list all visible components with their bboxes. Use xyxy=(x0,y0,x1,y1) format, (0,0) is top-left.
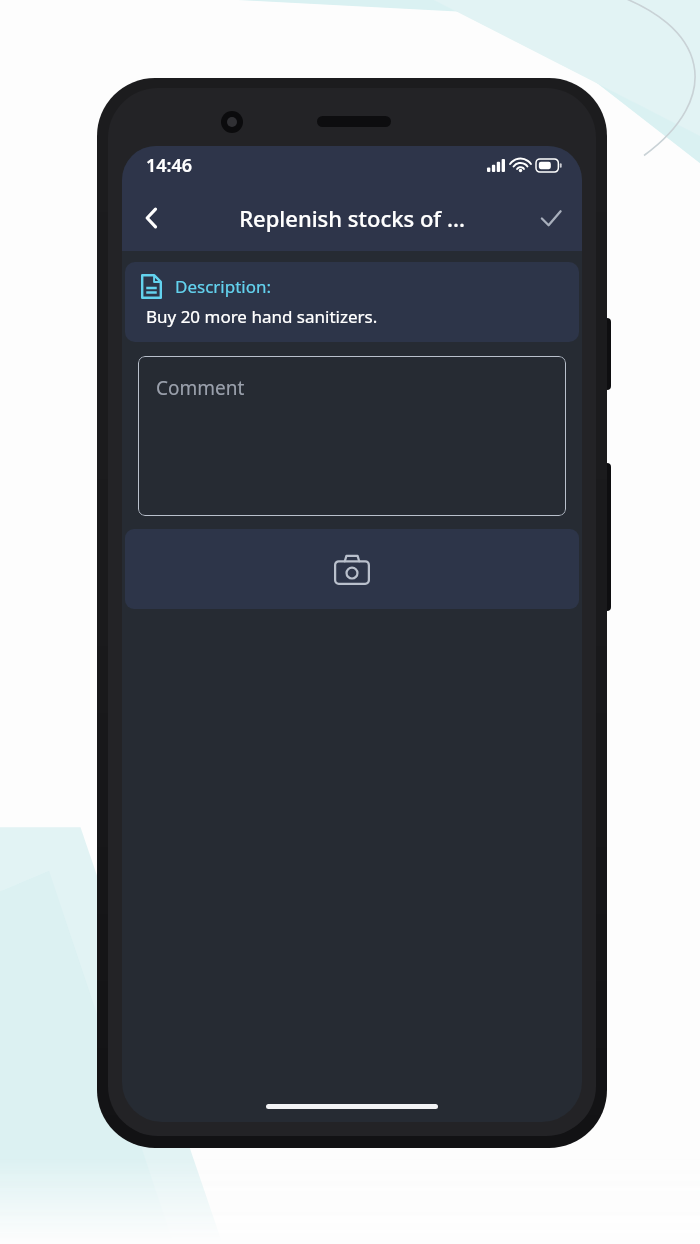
button[interactable]: Description: xyxy=(125,262,579,342)
staticText: Description: xyxy=(175,275,272,298)
staticText: 14:46 xyxy=(146,153,193,178)
button[interactable]: Back xyxy=(128,194,176,242)
button[interactable]: Save xyxy=(528,195,574,241)
button[interactable]: Comment xyxy=(138,356,566,516)
staticText: Comment xyxy=(156,375,245,401)
staticText: Replenish stocks of ... xyxy=(239,203,465,233)
staticText: Buy 20 more hand sanitizers. xyxy=(146,305,378,328)
button[interactable]: Take photo xyxy=(125,529,579,609)
